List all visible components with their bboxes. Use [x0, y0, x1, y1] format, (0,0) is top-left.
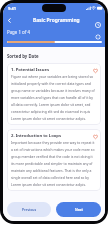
- staticText: 9:41: [8, 6, 16, 11]
- staticText: Page 1 of 4: [7, 29, 30, 35]
- staticText: Next: [75, 207, 83, 212]
- button[interactable]: 1. Potential Issues: [7, 63, 101, 125]
- button[interactable]: 2. Introduction to Loops: [7, 129, 101, 191]
- staticText: Important because they provide one way t…: [11, 140, 95, 187]
- button[interactable]: Favorite: [92, 133, 98, 139]
- button[interactable]: Back: [3, 14, 16, 27]
- button[interactable]: History: [94, 21, 102, 29]
- staticText: 2. Introduction to Loops: [11, 133, 90, 139]
- button[interactable]: Previous: [7, 202, 51, 217]
- button[interactable]: Settings: [94, 33, 102, 41]
- button[interactable]: Next: [56, 202, 101, 217]
- staticText: Previous: [22, 207, 37, 212]
- staticText: 1. Potential Issues: [11, 67, 90, 73]
- staticText: Figure out where your variables are bein…: [11, 74, 95, 121]
- staticText: Basic Programming: [33, 17, 80, 24]
- button[interactable]: Favorite: [92, 67, 98, 73]
- staticText: Sorted by Date: [7, 53, 39, 59]
